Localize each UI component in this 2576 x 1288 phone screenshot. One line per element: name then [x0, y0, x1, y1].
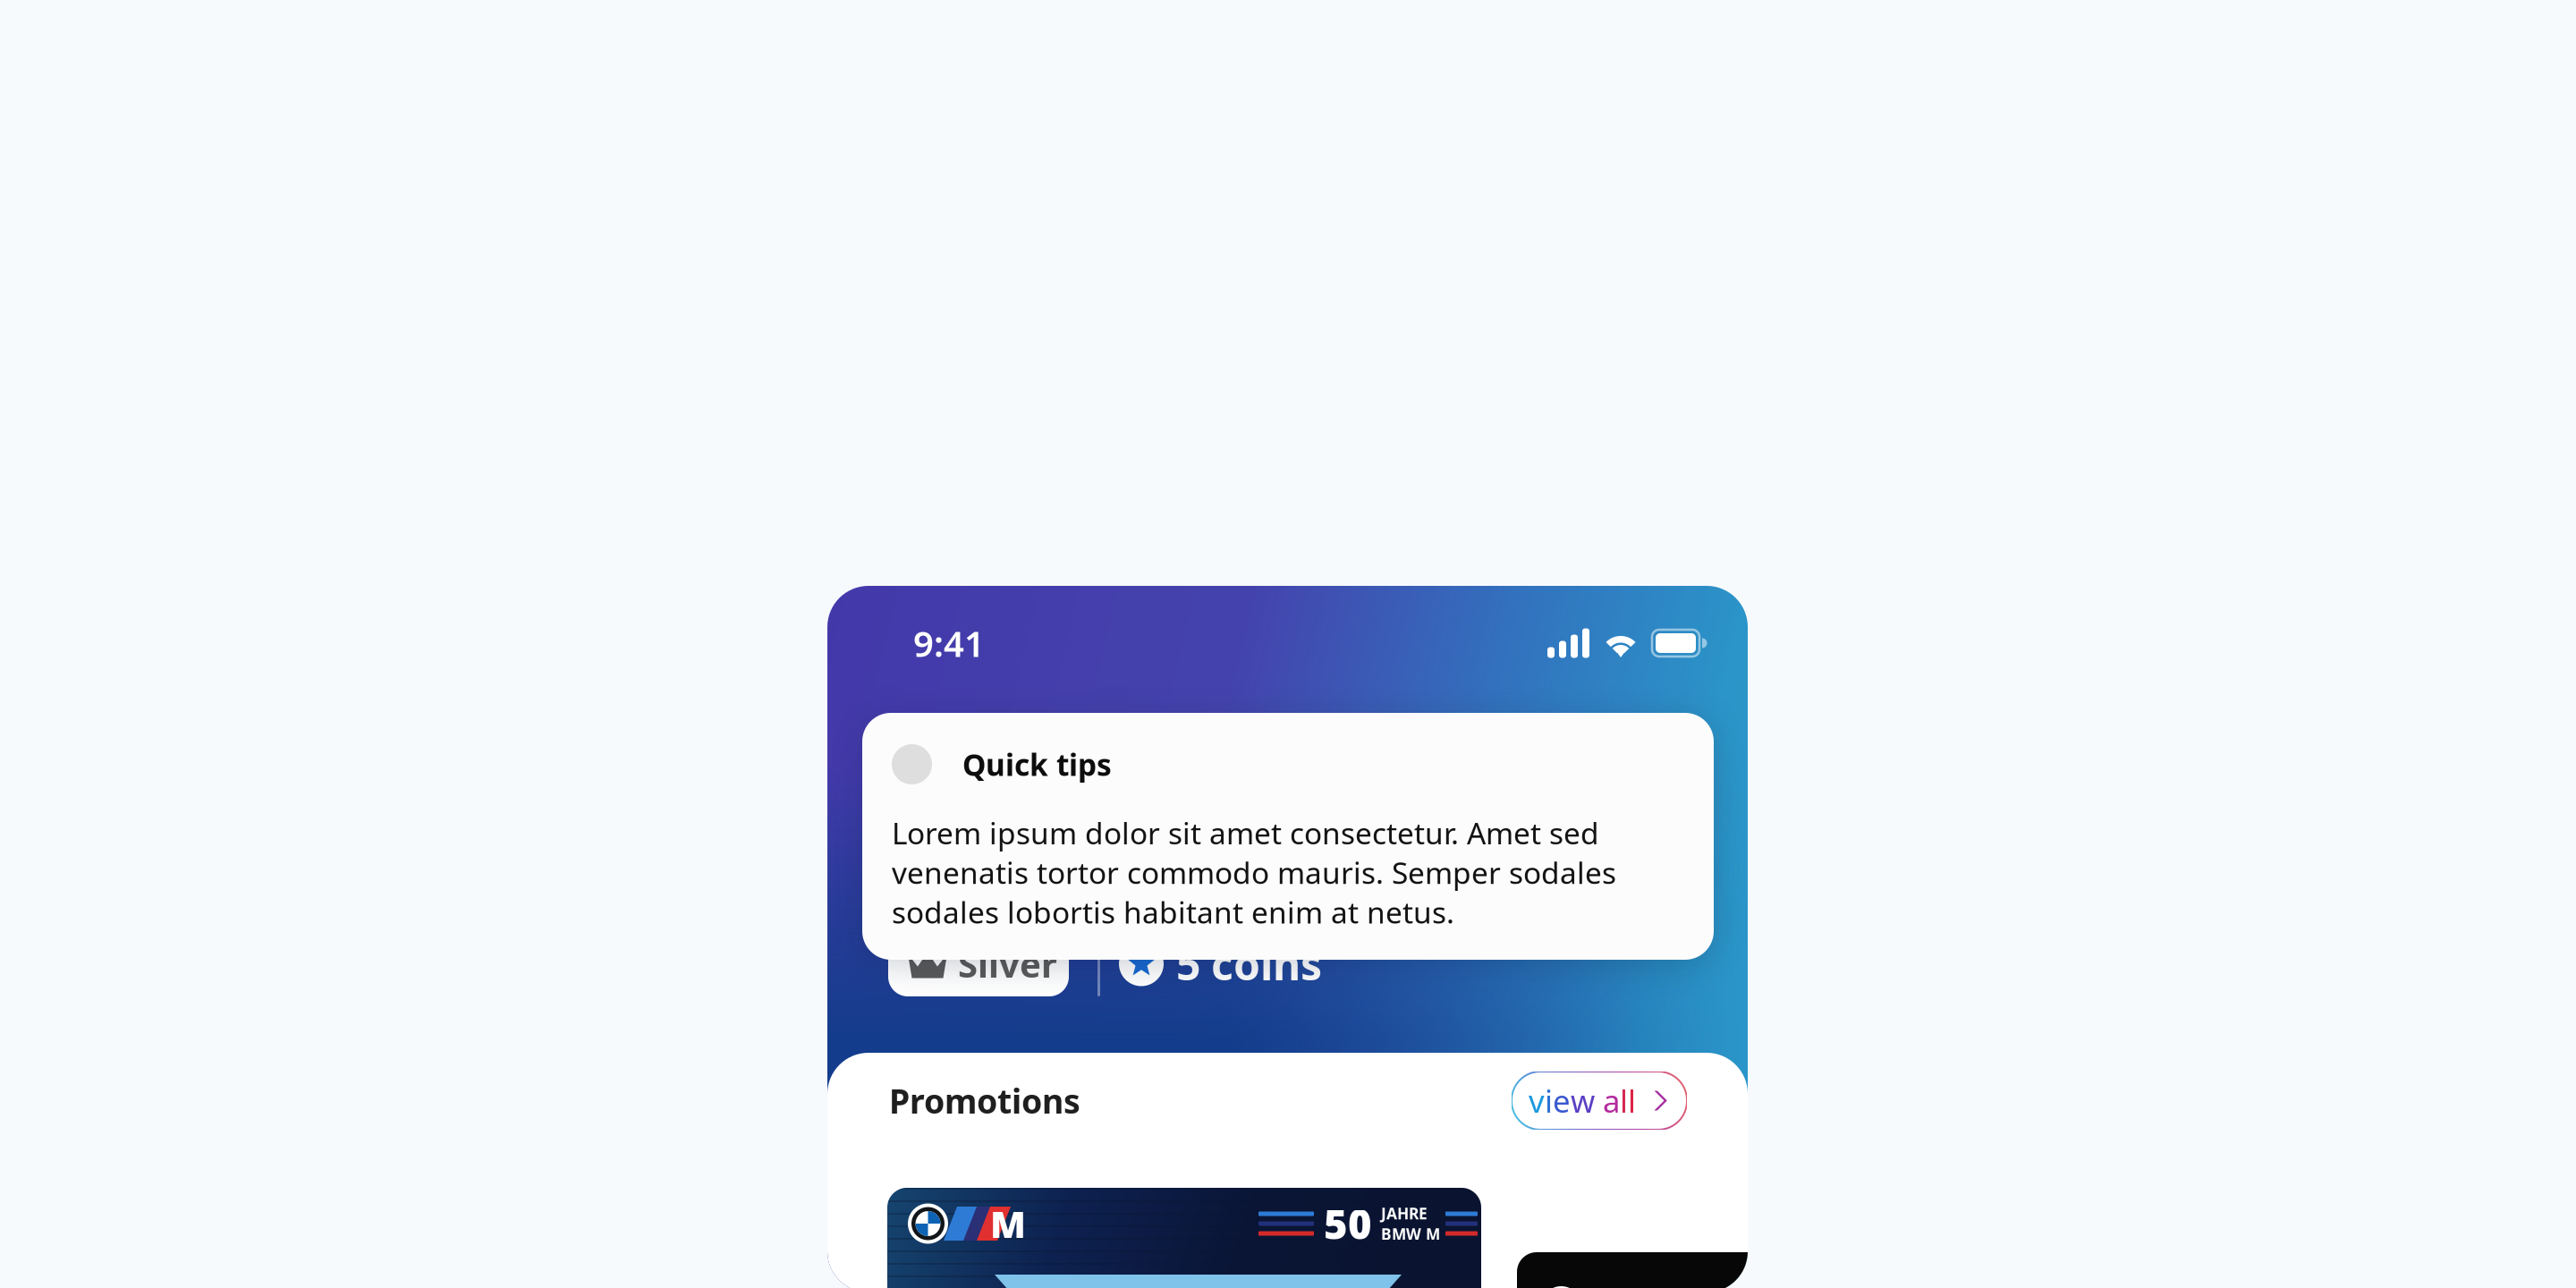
- staticText: w: [1571, 1080, 1595, 1121]
- staticText: 9:41: [913, 619, 985, 667]
- staticText: Quick tips: [962, 745, 1112, 784]
- staticText: l: [1620, 1080, 1628, 1121]
- staticText: e: [1553, 1080, 1571, 1121]
- button[interactable]: M: [1517, 1188, 1785, 1288]
- button[interactable]: v: [1512, 1072, 1687, 1130]
- staticText: l: [1628, 1080, 1636, 1121]
- staticText: i: [1545, 1080, 1553, 1121]
- staticText: JAHRE: [1381, 1203, 1428, 1224]
- staticText: Promotions: [889, 1078, 1080, 1123]
- button[interactable]: M: [887, 1188, 1481, 1288]
- staticText: M: [990, 1199, 1026, 1248]
- staticText: Lorem ipsum dolor sit amet consectetur. …: [892, 813, 1616, 932]
- staticText: Silver: [958, 940, 1057, 987]
- staticText: a: [1603, 1080, 1620, 1121]
- staticText: 50: [1324, 1197, 1372, 1251]
- staticText: BMW M: [1381, 1224, 1440, 1244]
- button[interactable]: Silver: [888, 931, 1069, 996]
- staticText: 5 coins: [1176, 935, 1322, 992]
- staticText: v: [1529, 1080, 1545, 1121]
